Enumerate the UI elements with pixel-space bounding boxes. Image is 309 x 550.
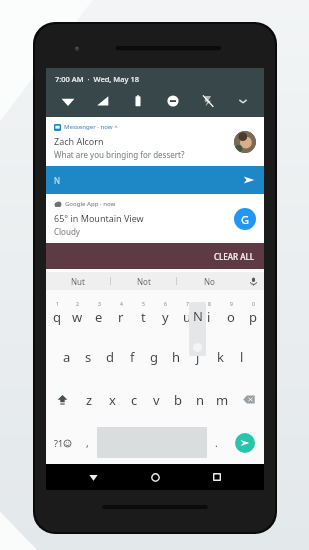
staticText: , xyxy=(86,436,89,450)
button[interactable]: Backspace xyxy=(233,378,264,421)
button[interactable]: Send xyxy=(235,433,255,453)
button[interactable]: Recent apps xyxy=(202,464,232,490)
staticText: n xyxy=(196,391,205,409)
button[interactable]: Wi-Fi xyxy=(55,92,81,110)
staticText: b xyxy=(174,391,182,409)
staticText: h xyxy=(172,348,181,366)
button[interactable]: h xyxy=(165,335,187,378)
button[interactable]: 1 xyxy=(46,292,67,335)
staticText: x xyxy=(109,391,116,409)
staticText: CLEAR ALL xyxy=(214,251,254,262)
staticText: k xyxy=(217,348,224,366)
staticText: t xyxy=(141,308,146,326)
button[interactable]: g xyxy=(143,335,165,378)
staticText: j xyxy=(196,348,200,366)
button[interactable]: Messenger · now ^ xyxy=(46,117,264,166)
button[interactable]: v xyxy=(145,378,167,421)
staticText: Messenger · now ^ xyxy=(64,123,118,131)
staticText: r xyxy=(118,308,124,326)
button[interactable]: 5 xyxy=(132,292,154,335)
button[interactable]: Home xyxy=(140,464,170,490)
staticText: z xyxy=(86,391,93,409)
button[interactable]: Send xyxy=(242,173,256,187)
staticText: q xyxy=(53,308,61,326)
staticText: w xyxy=(72,308,83,326)
button[interactable]: j xyxy=(187,335,209,378)
button[interactable]: 6 xyxy=(154,292,176,335)
button[interactable]: Nut xyxy=(46,272,110,290)
button[interactable]: s xyxy=(77,335,99,378)
button[interactable]: N xyxy=(46,166,264,194)
button[interactable]: 0 xyxy=(242,292,264,335)
staticText: Zach Alcorn xyxy=(54,135,104,147)
button[interactable]: Google App · now xyxy=(46,194,264,243)
button[interactable]: f xyxy=(121,335,143,378)
staticText: 65° in Mountain View xyxy=(54,212,144,224)
button[interactable]: , xyxy=(78,421,97,464)
button[interactable]: No xyxy=(177,272,242,290)
button[interactable]: 9 xyxy=(220,292,242,335)
staticText: What are you bringing for dessert? xyxy=(54,149,185,160)
staticText: G xyxy=(241,212,249,227)
staticText: No xyxy=(204,276,215,287)
staticText: a xyxy=(63,348,71,366)
staticText: N xyxy=(193,307,203,325)
staticText: Cloudy xyxy=(54,226,80,237)
button[interactable]: a xyxy=(56,335,77,378)
staticText: 9 xyxy=(230,301,233,308)
button[interactable]: Not xyxy=(111,272,176,290)
staticText: f xyxy=(130,348,135,366)
button[interactable]: 3 xyxy=(88,292,110,335)
staticText: 8 xyxy=(208,301,211,308)
button[interactable]: Back xyxy=(78,464,108,490)
button[interactable]: l xyxy=(231,335,253,378)
staticText: Google App · now xyxy=(65,200,116,208)
staticText: Nut xyxy=(71,276,85,287)
staticText: y xyxy=(162,308,169,326)
staticText: v xyxy=(153,391,160,409)
staticText: 5 xyxy=(142,301,145,308)
staticText: Not xyxy=(137,276,151,287)
staticText: o xyxy=(227,308,235,326)
button[interactable]: 2 xyxy=(67,292,88,335)
button[interactable]: m xyxy=(211,378,233,421)
button[interactable]: Voice input xyxy=(242,272,264,290)
staticText: e xyxy=(95,308,103,326)
staticText: 6 xyxy=(164,301,167,308)
button[interactable]: b xyxy=(167,378,189,421)
staticText: g xyxy=(150,348,158,366)
staticText: s xyxy=(85,348,92,366)
button[interactable]: Battery xyxy=(125,92,151,110)
button[interactable]: Cellular signal xyxy=(90,92,116,110)
button[interactable]: CLEAR ALL xyxy=(46,243,264,269)
button[interactable]: Shift xyxy=(46,378,78,421)
button[interactable]: . xyxy=(207,421,226,464)
staticText: u xyxy=(183,308,192,326)
staticText: N xyxy=(54,175,61,186)
staticText: 1 xyxy=(56,301,59,308)
button[interactable]: k xyxy=(209,335,231,378)
staticText: ?1 xyxy=(54,437,64,449)
button[interactable]: c xyxy=(123,378,145,421)
button[interactable]: z xyxy=(78,378,101,421)
staticText: 7 xyxy=(186,301,189,308)
button[interactable]: 4 xyxy=(110,292,132,335)
button[interactable]: d xyxy=(99,335,121,378)
staticText: 3 xyxy=(98,301,101,308)
button[interactable]: Expand xyxy=(230,92,256,110)
button[interactable]: x xyxy=(101,378,123,421)
staticText: 2 xyxy=(76,301,79,308)
button[interactable]: 7 xyxy=(176,292,198,335)
button[interactable]: n xyxy=(189,378,211,421)
staticText: i xyxy=(207,308,211,326)
button[interactable]: Flashlight off xyxy=(195,92,221,110)
button[interactable]: 8 xyxy=(198,292,220,335)
button[interactable]: ?1 xyxy=(46,421,78,464)
staticText: l xyxy=(240,348,244,366)
staticText: 0 xyxy=(252,301,255,308)
staticText: d xyxy=(106,348,114,366)
button[interactable]: Do not disturb xyxy=(160,92,186,110)
staticText: m xyxy=(216,391,229,409)
staticText: . xyxy=(215,436,218,450)
